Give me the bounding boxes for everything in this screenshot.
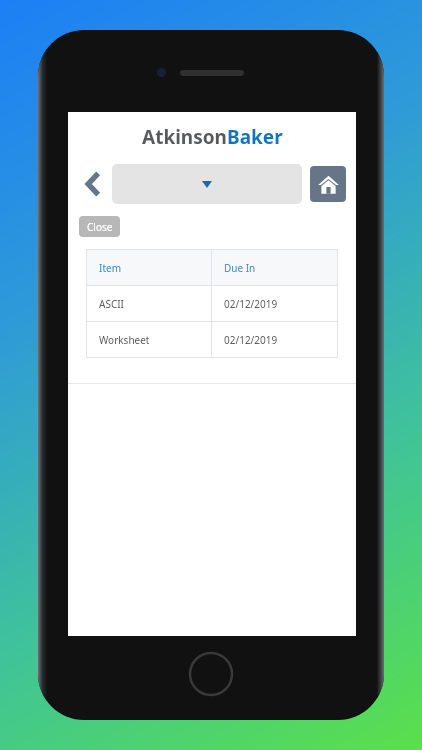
button[interactable]: ASCII — [86, 286, 338, 321]
staticText: Close — [87, 220, 113, 234]
button[interactable]: Worksheet — [86, 322, 338, 357]
button[interactable]: Home — [188, 651, 234, 697]
button[interactable]: Back — [78, 164, 108, 204]
staticText: ASCII — [99, 297, 124, 311]
staticText: Baker — [227, 124, 283, 150]
staticText: Atkinson — [142, 124, 227, 150]
staticText: 02/12/2019 — [224, 297, 278, 311]
staticText: Worksheet — [99, 333, 150, 347]
button[interactable] — [112, 164, 302, 204]
staticText: 02/12/2019 — [224, 333, 278, 347]
button[interactable]: Item — [86, 250, 338, 285]
button[interactable]: Close — [79, 216, 120, 237]
button[interactable]: Home — [310, 166, 346, 202]
staticText: Item — [99, 261, 121, 275]
staticText: Due In — [224, 261, 256, 275]
